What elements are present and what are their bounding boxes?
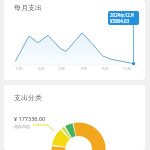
staticText: 3月 bbox=[34, 66, 48, 71]
staticText: 7月 bbox=[77, 66, 91, 71]
staticText: 每月支出 bbox=[14, 3, 42, 12]
staticText: 9月 bbox=[98, 66, 112, 71]
staticText: 转账充值 bbox=[14, 124, 30, 129]
staticText: 支出分类 bbox=[14, 93, 42, 102]
other: Expense categories chart bbox=[4, 85, 145, 150]
button[interactable]: 每月支出 bbox=[4, 0, 145, 80]
staticText: 11月 bbox=[120, 66, 134, 71]
staticText: 5月 bbox=[55, 66, 69, 71]
staticText: 2024年12月 bbox=[110, 12, 135, 18]
staticText: 1月 bbox=[12, 66, 26, 71]
button[interactable]: 支出分类 bbox=[4, 85, 145, 150]
staticText: ¥3804.63 bbox=[110, 18, 130, 24]
staticText: ¥ 177336.00 bbox=[14, 115, 46, 122]
